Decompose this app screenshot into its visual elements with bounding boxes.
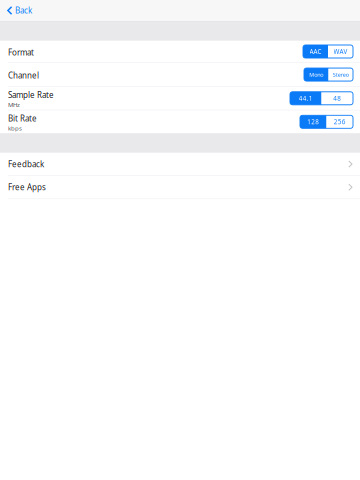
button[interactable]: Free Apps xyxy=(0,176,360,198)
button[interactable]: 128 xyxy=(300,115,326,128)
button[interactable]: 48 xyxy=(321,92,353,105)
staticText: Back xyxy=(15,5,32,16)
button[interactable]: AAC xyxy=(303,45,328,58)
staticText: MHz xyxy=(8,100,20,109)
button[interactable]: WAV xyxy=(328,45,353,58)
staticText: Sample Rate xyxy=(8,90,54,100)
button[interactable]: Back xyxy=(0,0,40,21)
staticText: WAV xyxy=(333,47,347,56)
staticText: Channel xyxy=(8,70,39,81)
button[interactable]: 256 xyxy=(326,115,353,128)
staticText: Stereo xyxy=(333,71,349,78)
button[interactable]: Mono xyxy=(304,68,328,81)
staticText: Free Apps xyxy=(8,182,46,193)
staticText: 44.1 xyxy=(299,94,313,102)
staticText: 48 xyxy=(333,94,341,102)
staticText: Bit Rate xyxy=(8,113,37,124)
staticText: AAC xyxy=(309,47,321,56)
staticText: 256 xyxy=(334,117,346,126)
staticText: Format xyxy=(8,47,34,58)
button[interactable]: 44.1 xyxy=(290,92,321,105)
staticText: Mono xyxy=(309,71,323,78)
button[interactable]: Feedback xyxy=(0,153,360,175)
staticText: 128 xyxy=(307,117,319,126)
staticText: kbps xyxy=(8,124,22,132)
button[interactable]: Stereo xyxy=(328,68,353,81)
staticText: Feedback xyxy=(8,159,44,170)
